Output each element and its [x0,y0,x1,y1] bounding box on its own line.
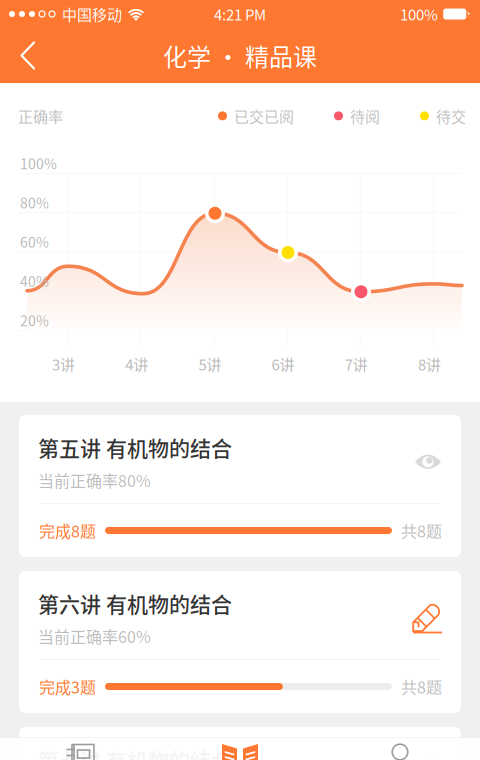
button[interactable]: 作业 [0,743,160,760]
staticText: 已交已阅 [234,105,294,127]
button[interactable]: 第六讲 有机物的结合 [19,571,461,713]
staticText: 8讲 [418,353,441,375]
staticText: 7讲 [345,353,368,375]
staticText: 共8题 [401,675,442,698]
staticText: 完成3题 [39,675,96,698]
staticText: 6讲 [272,353,295,375]
staticText: 60% [20,231,49,252]
staticText: 40% [20,271,49,291]
staticText: 20% [20,310,49,330]
staticText: 待交 [436,105,466,127]
staticText: 第七讲 有机物的结合 [38,744,232,760]
staticText: 化学 · 精品课 [163,38,317,73]
staticText: 4讲 [125,353,148,375]
staticText: 完成8题 [39,519,96,542]
staticText: 当前正确率80% [38,468,151,492]
staticText: 中国移动 [62,3,122,25]
button[interactable]: 第五讲 有机物的结合 [19,415,461,557]
staticText: 第五讲 有机物的结合 [38,432,232,462]
staticText: 当前正确率60% [38,624,151,648]
button[interactable]: 课程 [160,743,320,760]
staticText: 第六讲 有机物的结合 [38,588,232,618]
staticText: 正确率 [18,105,63,127]
button[interactable]: 我的 [320,743,480,760]
staticText: 5讲 [198,353,221,375]
staticText: 3讲 [52,353,75,375]
staticText: 80% [20,192,49,212]
button[interactable]: 第七讲 有机物的结合 [19,727,461,760]
staticText: 待阅 [350,105,380,127]
staticText: 100% [20,153,57,173]
staticText: 100% [400,3,438,25]
button[interactable]: 返回 [0,28,54,83]
staticText: 4:21 PM [214,3,266,25]
staticText: 共8题 [401,519,442,542]
